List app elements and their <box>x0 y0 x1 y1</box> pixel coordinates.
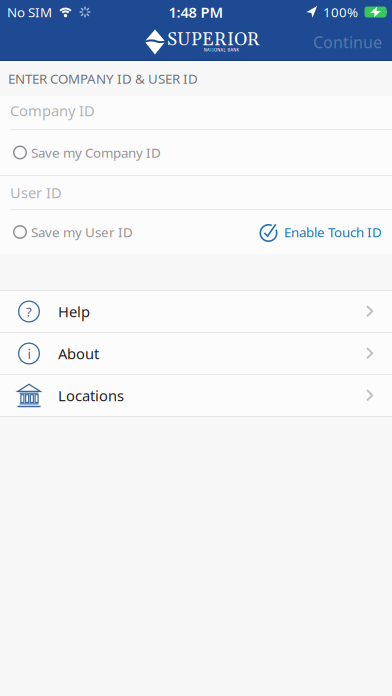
staticText: SUPERIOR <box>167 29 260 51</box>
button[interactable]: ? <box>0 291 392 332</box>
button[interactable]: Enable Touch ID <box>259 221 392 242</box>
staticText: Company ID <box>10 101 95 120</box>
staticText: i <box>27 345 30 362</box>
staticText: Enable Touch ID <box>284 223 382 241</box>
staticText: 100% <box>323 3 358 21</box>
button[interactable]: Save my User ID <box>0 223 133 241</box>
staticText: User ID <box>10 183 62 202</box>
staticText: Help <box>58 302 90 321</box>
staticText: Save my Company ID <box>31 144 161 161</box>
button[interactable]: i <box>0 333 392 374</box>
button[interactable]: Continue <box>313 31 392 53</box>
button[interactable]: Save my Company ID <box>0 130 392 175</box>
staticText: No SIM <box>7 3 52 21</box>
button[interactable]: Locations <box>0 375 392 416</box>
staticText: About <box>58 344 99 363</box>
staticText: Save my User ID <box>31 223 133 241</box>
staticText: ? <box>26 303 32 320</box>
staticText: NATIONAL BANK <box>173 42 270 57</box>
staticText: 1:48 PM <box>168 2 223 22</box>
staticText: ENTER COMPANY ID & USER ID <box>8 70 198 87</box>
staticText: Continue <box>313 31 382 53</box>
staticText: Locations <box>58 386 124 405</box>
